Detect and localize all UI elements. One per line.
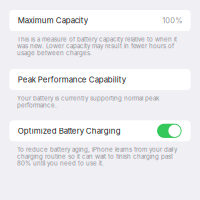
staticText: Maximum Capacity [18, 16, 88, 25]
staticText: Optimized Battery Charging [18, 126, 121, 135]
staticText: Peak Performance Capability [18, 75, 126, 84]
staticText: This is a measure of battery capacity re… [17, 36, 177, 57]
button[interactable]: Maximum Capacity [9, 10, 191, 31]
staticText: To reduce battery aging, iPhone learns f… [17, 146, 177, 167]
staticText: 100% [162, 16, 182, 25]
staticText: Your battery is currently supporting nor… [17, 95, 159, 109]
button[interactable]: Optimized Battery Charging [9, 120, 191, 141]
button[interactable]: Peak Performance Capability [9, 69, 191, 90]
